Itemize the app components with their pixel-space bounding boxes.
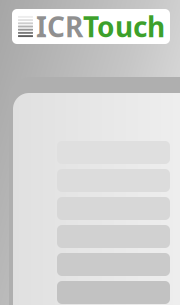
staticText: ICR [36,8,83,45]
staticText: Touch [83,8,165,45]
